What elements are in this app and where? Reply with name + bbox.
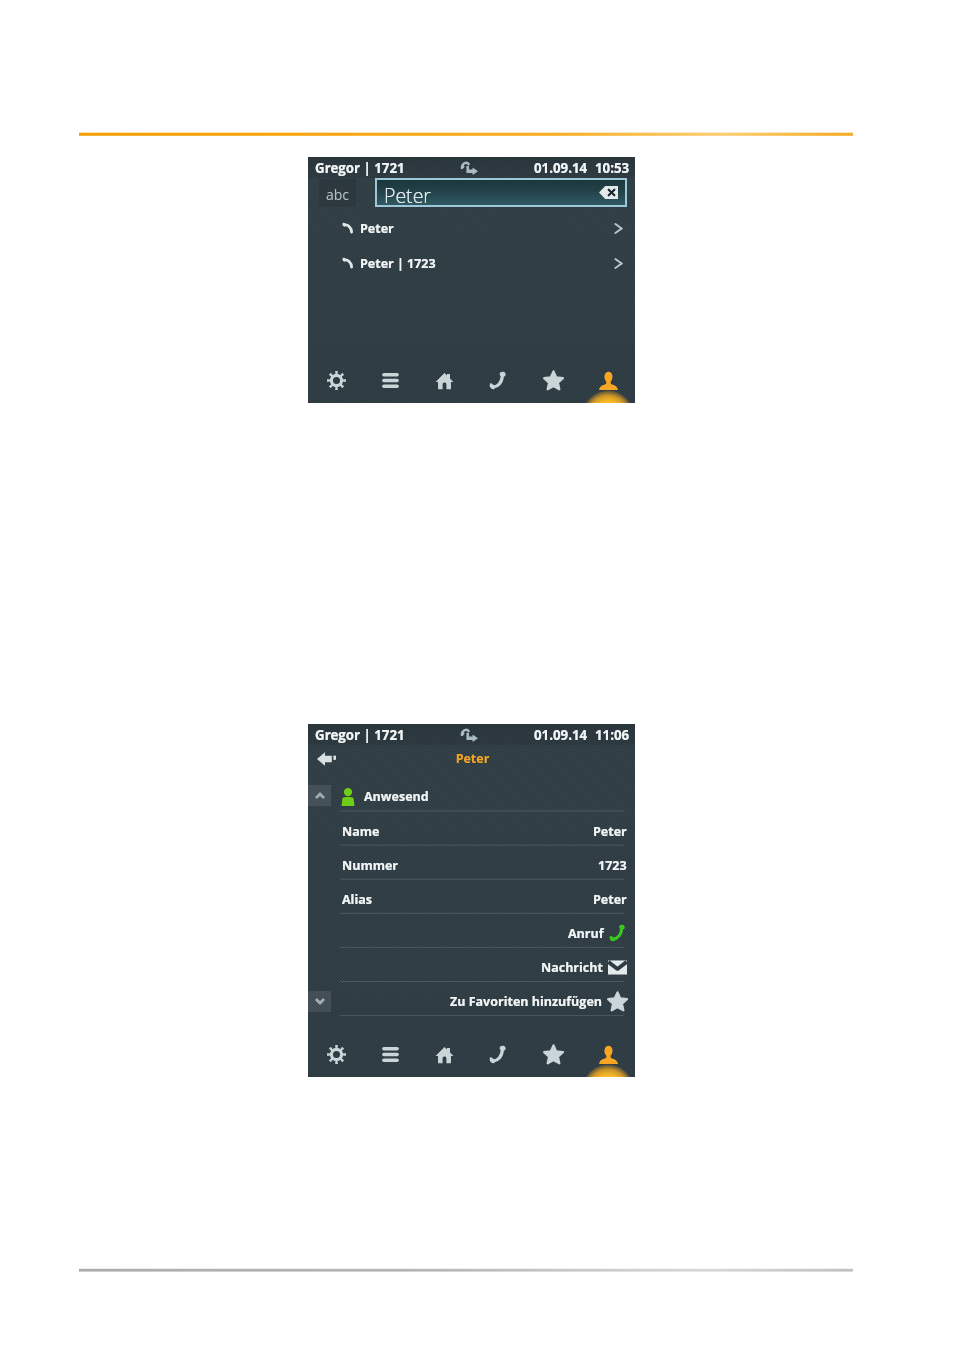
button[interactable]: Peter | 1723: [308, 248, 635, 278]
staticText: Anruf: [568, 925, 604, 942]
button[interactable]: Calls: [474, 362, 522, 398]
staticText: Peter | 1723: [360, 255, 436, 272]
staticText: 11:06: [595, 726, 630, 744]
staticText: 1723: [598, 857, 627, 874]
button[interactable]: Favorites: [529, 362, 577, 398]
button[interactable]: Nachricht: [342, 950, 627, 984]
button[interactable]: Home: [420, 362, 468, 398]
staticText: Peter: [593, 823, 627, 840]
button[interactable]: Zu Favoriten hinzufügen: [342, 984, 627, 1018]
staticText: Peter: [384, 182, 431, 207]
button[interactable]: Contacts: [584, 1036, 632, 1072]
button[interactable]: Calls: [474, 1036, 522, 1072]
staticText: Peter: [360, 220, 394, 237]
button[interactable]: Anruf: [342, 916, 627, 950]
button[interactable]: Name: [342, 814, 627, 848]
button[interactable]: Menu: [366, 1036, 414, 1072]
staticText: Gregor | 1721: [315, 726, 405, 744]
button[interactable]: Settings: [312, 1036, 360, 1072]
staticText: Name: [342, 823, 380, 840]
staticText: 10:53: [595, 159, 630, 177]
staticText: Nachricht: [541, 959, 603, 976]
staticText: Anwesend: [364, 788, 429, 805]
staticText: Alias: [342, 891, 373, 908]
button[interactable]: Nummer: [342, 848, 627, 882]
staticText: Gregor | 1721: [315, 159, 405, 177]
staticText: 01.09.14: [534, 726, 588, 744]
button[interactable]: Contacts: [584, 362, 632, 398]
button[interactable]: Expand: [308, 991, 331, 1012]
button[interactable]: abc: [319, 179, 356, 207]
button[interactable]: Back: [310, 746, 342, 772]
other: Backspace: [599, 186, 618, 199]
staticText: Nummer: [342, 857, 398, 874]
button[interactable]: Alias: [342, 882, 627, 916]
button[interactable]: Settings: [312, 362, 360, 398]
staticText: Peter: [593, 891, 627, 908]
button[interactable]: Menu: [366, 362, 414, 398]
staticText: Peter: [310, 750, 635, 767]
button[interactable]: Peter: [308, 213, 635, 243]
button[interactable]: Collapse: [308, 785, 331, 806]
button[interactable]: Anwesend: [341, 782, 429, 811]
button[interactable]: Favorites: [529, 1036, 577, 1072]
staticText: 01.09.14: [534, 159, 588, 177]
button[interactable]: Peter: [377, 180, 625, 205]
button[interactable]: Home: [420, 1036, 468, 1072]
staticText: Zu Favoriten hinzufügen: [450, 993, 603, 1010]
staticText: abc: [326, 185, 350, 204]
